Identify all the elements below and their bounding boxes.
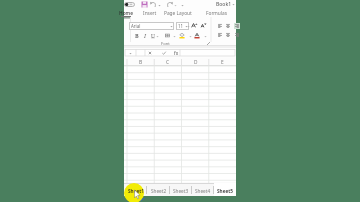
staticText: Sheet1 <box>128 188 144 194</box>
staticText: I <box>144 32 146 39</box>
button[interactable]: Font name <box>129 22 174 30</box>
staticText: Arial <box>131 23 141 29</box>
button[interactable]: AutoSave <box>124 2 135 7</box>
button[interactable]: Home <box>121 9 131 17</box>
staticText: C <box>166 59 170 66</box>
staticText: Insert <box>143 10 157 17</box>
button[interactable]: Fill colour <box>178 32 186 39</box>
button[interactable]: Alignment <box>234 23 240 29</box>
button[interactable]: Alignment <box>225 32 231 38</box>
button[interactable]: Enter <box>161 50 167 56</box>
button[interactable]: Alignment <box>217 32 223 38</box>
button[interactable]: Insert <box>144 9 156 17</box>
button[interactable]: Bold <box>133 32 140 39</box>
staticText: Page Layout <box>164 10 192 17</box>
staticText: E <box>221 59 224 66</box>
staticText: 11 <box>178 23 184 29</box>
button[interactable]: Sheet4 <box>192 183 214 196</box>
staticText: Home <box>119 10 133 17</box>
staticText: Font <box>161 41 170 47</box>
button[interactable]: Redo <box>166 1 173 8</box>
button[interactable]: Undo <box>150 1 157 8</box>
button[interactable]: Italic <box>141 32 148 39</box>
button[interactable]: Alignment <box>217 23 223 29</box>
button[interactable]: Alignment <box>225 23 231 29</box>
button[interactable]: Page Layout <box>166 9 190 17</box>
button[interactable]: Borders <box>164 32 171 39</box>
button[interactable]: Grow font <box>191 22 198 29</box>
staticText: D <box>194 59 198 66</box>
staticText: fx <box>174 50 179 56</box>
staticText: B <box>135 32 139 39</box>
staticText: Sheet2 <box>151 188 167 194</box>
staticText: Sheet5 <box>217 188 233 194</box>
staticText: Sheet3 <box>173 188 189 194</box>
button[interactable]: Cancel <box>147 50 153 56</box>
staticText: U <box>151 32 155 39</box>
button[interactable]: Font size <box>176 22 189 30</box>
button[interactable]: Insert function <box>174 50 180 56</box>
button[interactable]: Sheet5 <box>214 183 236 196</box>
button[interactable]: Underline <box>149 32 156 39</box>
staticText: Book1 <box>216 1 232 8</box>
button[interactable]: Sheet1 <box>124 183 147 196</box>
button[interactable]: Formulas <box>207 9 226 17</box>
button[interactable]: Sheet3 <box>170 183 192 196</box>
button[interactable]: Alignment <box>234 32 240 38</box>
staticText: Formulas <box>206 10 228 17</box>
button[interactable]: Sheet2 <box>147 183 170 196</box>
button[interactable]: Save <box>141 1 148 8</box>
staticText: B <box>139 59 143 66</box>
staticText: Sheet4 <box>195 188 211 194</box>
button[interactable]: Font colour <box>193 32 201 39</box>
button[interactable]: Shrink font <box>200 22 207 29</box>
